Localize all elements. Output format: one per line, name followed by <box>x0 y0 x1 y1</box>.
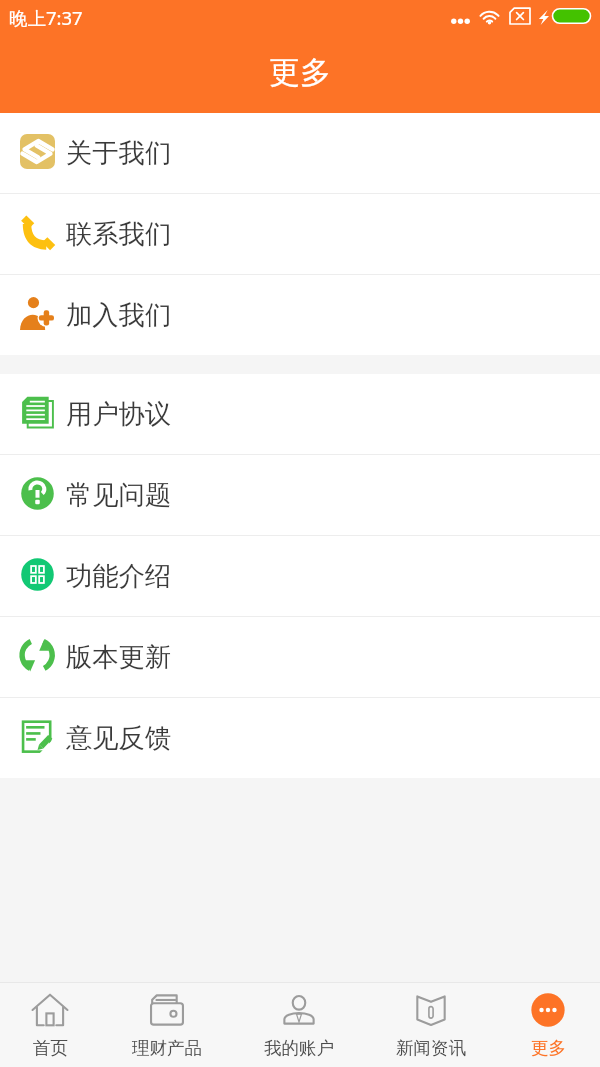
button[interactable]: 新闻资讯 <box>373 983 489 1067</box>
button[interactable]: 理财产品 <box>109 983 225 1067</box>
staticText: 联系我们 <box>66 218 172 251</box>
staticText: 晚上7:37 <box>9 5 83 30</box>
staticText: 首页 <box>33 1037 68 1059</box>
staticText: 常见问题 <box>66 479 172 512</box>
button[interactable]: 意见反馈 <box>0 698 600 778</box>
staticText: 关于我们 <box>66 137 172 170</box>
button[interactable]: 我的账户 <box>241 983 357 1067</box>
button[interactable]: 关于我们 <box>0 113 600 193</box>
button[interactable]: 用户协议 <box>0 374 600 454</box>
staticText: 更多 <box>269 53 331 92</box>
staticText: 更多 <box>531 1037 566 1059</box>
staticText: 功能介绍 <box>66 560 172 593</box>
staticText: 新闻资讯 <box>396 1037 466 1059</box>
staticText: 意见反馈 <box>66 722 172 755</box>
button[interactable]: 联系我们 <box>0 194 600 274</box>
staticText: 加入我们 <box>66 299 172 332</box>
staticText: 版本更新 <box>66 641 172 674</box>
button[interactable]: 功能介绍 <box>0 536 600 616</box>
staticText: 我的账户 <box>264 1037 334 1059</box>
button[interactable]: 常见问题 <box>0 455 600 535</box>
button[interactable]: 加入我们 <box>0 275 600 355</box>
button[interactable]: 版本更新 <box>0 617 600 697</box>
staticText: 用户协议 <box>66 398 172 431</box>
staticText: 理财产品 <box>132 1037 202 1059</box>
button[interactable]: 首页 <box>0 983 108 1067</box>
button[interactable]: 更多 <box>490 983 600 1067</box>
